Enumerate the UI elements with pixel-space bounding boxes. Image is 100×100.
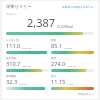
staticText: 栄養素の目標値を設定する [62,5,94,8]
staticText: 食物繊維 [6,75,16,78]
button[interactable]: 栄養素の目標値を設定する [62,5,94,8]
button[interactable]: 炭水化物 [6,57,48,72]
button[interactable]: 食物繊維 [6,75,48,90]
staticText: /7.5g [67,82,73,85]
staticText: 脂質 [51,39,56,42]
staticText: /73.9g [64,46,72,49]
staticText: 32.3 [6,78,18,86]
staticText: 274.0 [51,60,66,68]
staticText: 栄養サマリー [6,4,32,9]
staticText: /21.0g [19,82,27,85]
staticText: 2,387 [27,15,56,30]
staticText: /109.3g [22,46,31,49]
staticText: /313.0g [67,64,76,67]
staticText: 11.15 [51,78,66,86]
staticText: 111.0 [6,42,21,50]
staticText: 310.7 [6,60,21,68]
staticText: 糖質 [51,57,56,60]
staticText: 詳細を見る → [78,92,94,96]
button[interactable]: 詳細を見る → [78,92,94,96]
staticText: カロリー [6,12,17,15]
button[interactable]: 脂質 [51,39,94,54]
staticText: たんぱく質 [6,39,19,42]
staticText: /2,429kcal [57,24,74,29]
button[interactable]: 糖質 [51,57,94,72]
staticText: 塩分 [51,75,56,78]
button[interactable]: たんぱく質 [6,39,48,54]
button[interactable]: 塩分 [51,75,94,90]
staticText: /334.0g [22,64,31,67]
staticText: 85.1 [51,42,63,50]
staticText: 炭水化物 [6,57,16,60]
